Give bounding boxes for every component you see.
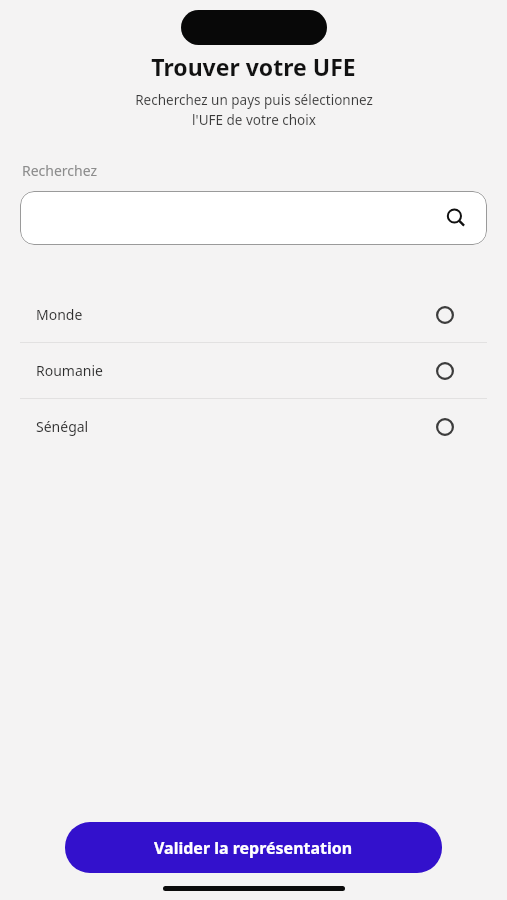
staticText: Sénégal bbox=[36, 417, 89, 436]
staticText: Recherchez bbox=[22, 161, 98, 180]
button[interactable]: Valider la représentation bbox=[65, 822, 442, 873]
other: Sélectionner Sénégal bbox=[435, 417, 455, 437]
staticText: Trouver votre UFE bbox=[151, 51, 356, 82]
other: Sélectionner Roumanie bbox=[435, 361, 455, 381]
staticText: Recherchez un pays puis sélectionnez l'U… bbox=[135, 91, 373, 129]
staticText: Roumanie bbox=[36, 361, 103, 380]
staticText: Valider la représentation bbox=[154, 837, 353, 859]
button[interactable]: Sénégal bbox=[0, 399, 507, 454]
button[interactable]: Monde bbox=[0, 287, 507, 342]
staticText: Monde bbox=[36, 305, 83, 324]
button[interactable]: Roumanie bbox=[0, 343, 507, 398]
other: Sélectionner Monde bbox=[435, 305, 455, 325]
other: Rechercher bbox=[443, 205, 469, 231]
button[interactable]: Rechercher bbox=[20, 191, 487, 245]
